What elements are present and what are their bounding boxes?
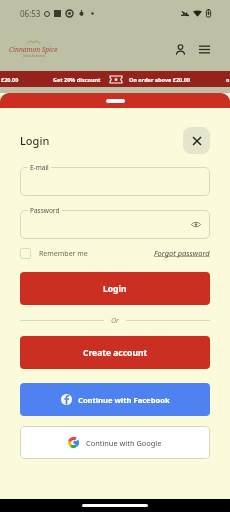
staticText: Continue with Google [86, 438, 162, 448]
button[interactable]: Close [183, 127, 210, 154]
button[interactable]: Continue with Google [20, 426, 210, 459]
staticText: Login [20, 133, 50, 148]
button[interactable]: Menu [197, 42, 212, 57]
button[interactable]: Remember me [20, 248, 88, 259]
staticText: On order above £20.00 [129, 76, 191, 83]
staticText: Continue with Facebook [78, 395, 170, 405]
staticText: 06:53 [20, 8, 41, 19]
staticText: Cinnamon Spice [9, 45, 58, 54]
staticText: £20.00 [1, 76, 19, 83]
staticText: Indian Restaurant [23, 54, 45, 58]
staticText: Password [30, 206, 60, 215]
staticText: E-mail [30, 163, 49, 172]
button[interactable] [20, 210, 210, 239]
button[interactable]: Forgot password [154, 248, 210, 258]
staticText: Login [103, 283, 127, 295]
staticText: Create account [83, 347, 148, 359]
button[interactable]: Create account [20, 336, 210, 369]
staticText: Get 20% discount [53, 76, 101, 83]
button[interactable]: £20.00 [0, 71, 230, 87]
button[interactable]: Continue with Facebook [20, 383, 210, 416]
staticText: Or [111, 316, 119, 326]
button[interactable]: Login [20, 272, 210, 305]
staticText: o [226, 76, 230, 83]
button[interactable] [20, 167, 210, 196]
button[interactable]: Account [173, 42, 188, 57]
staticText: Remember me [39, 249, 88, 259]
